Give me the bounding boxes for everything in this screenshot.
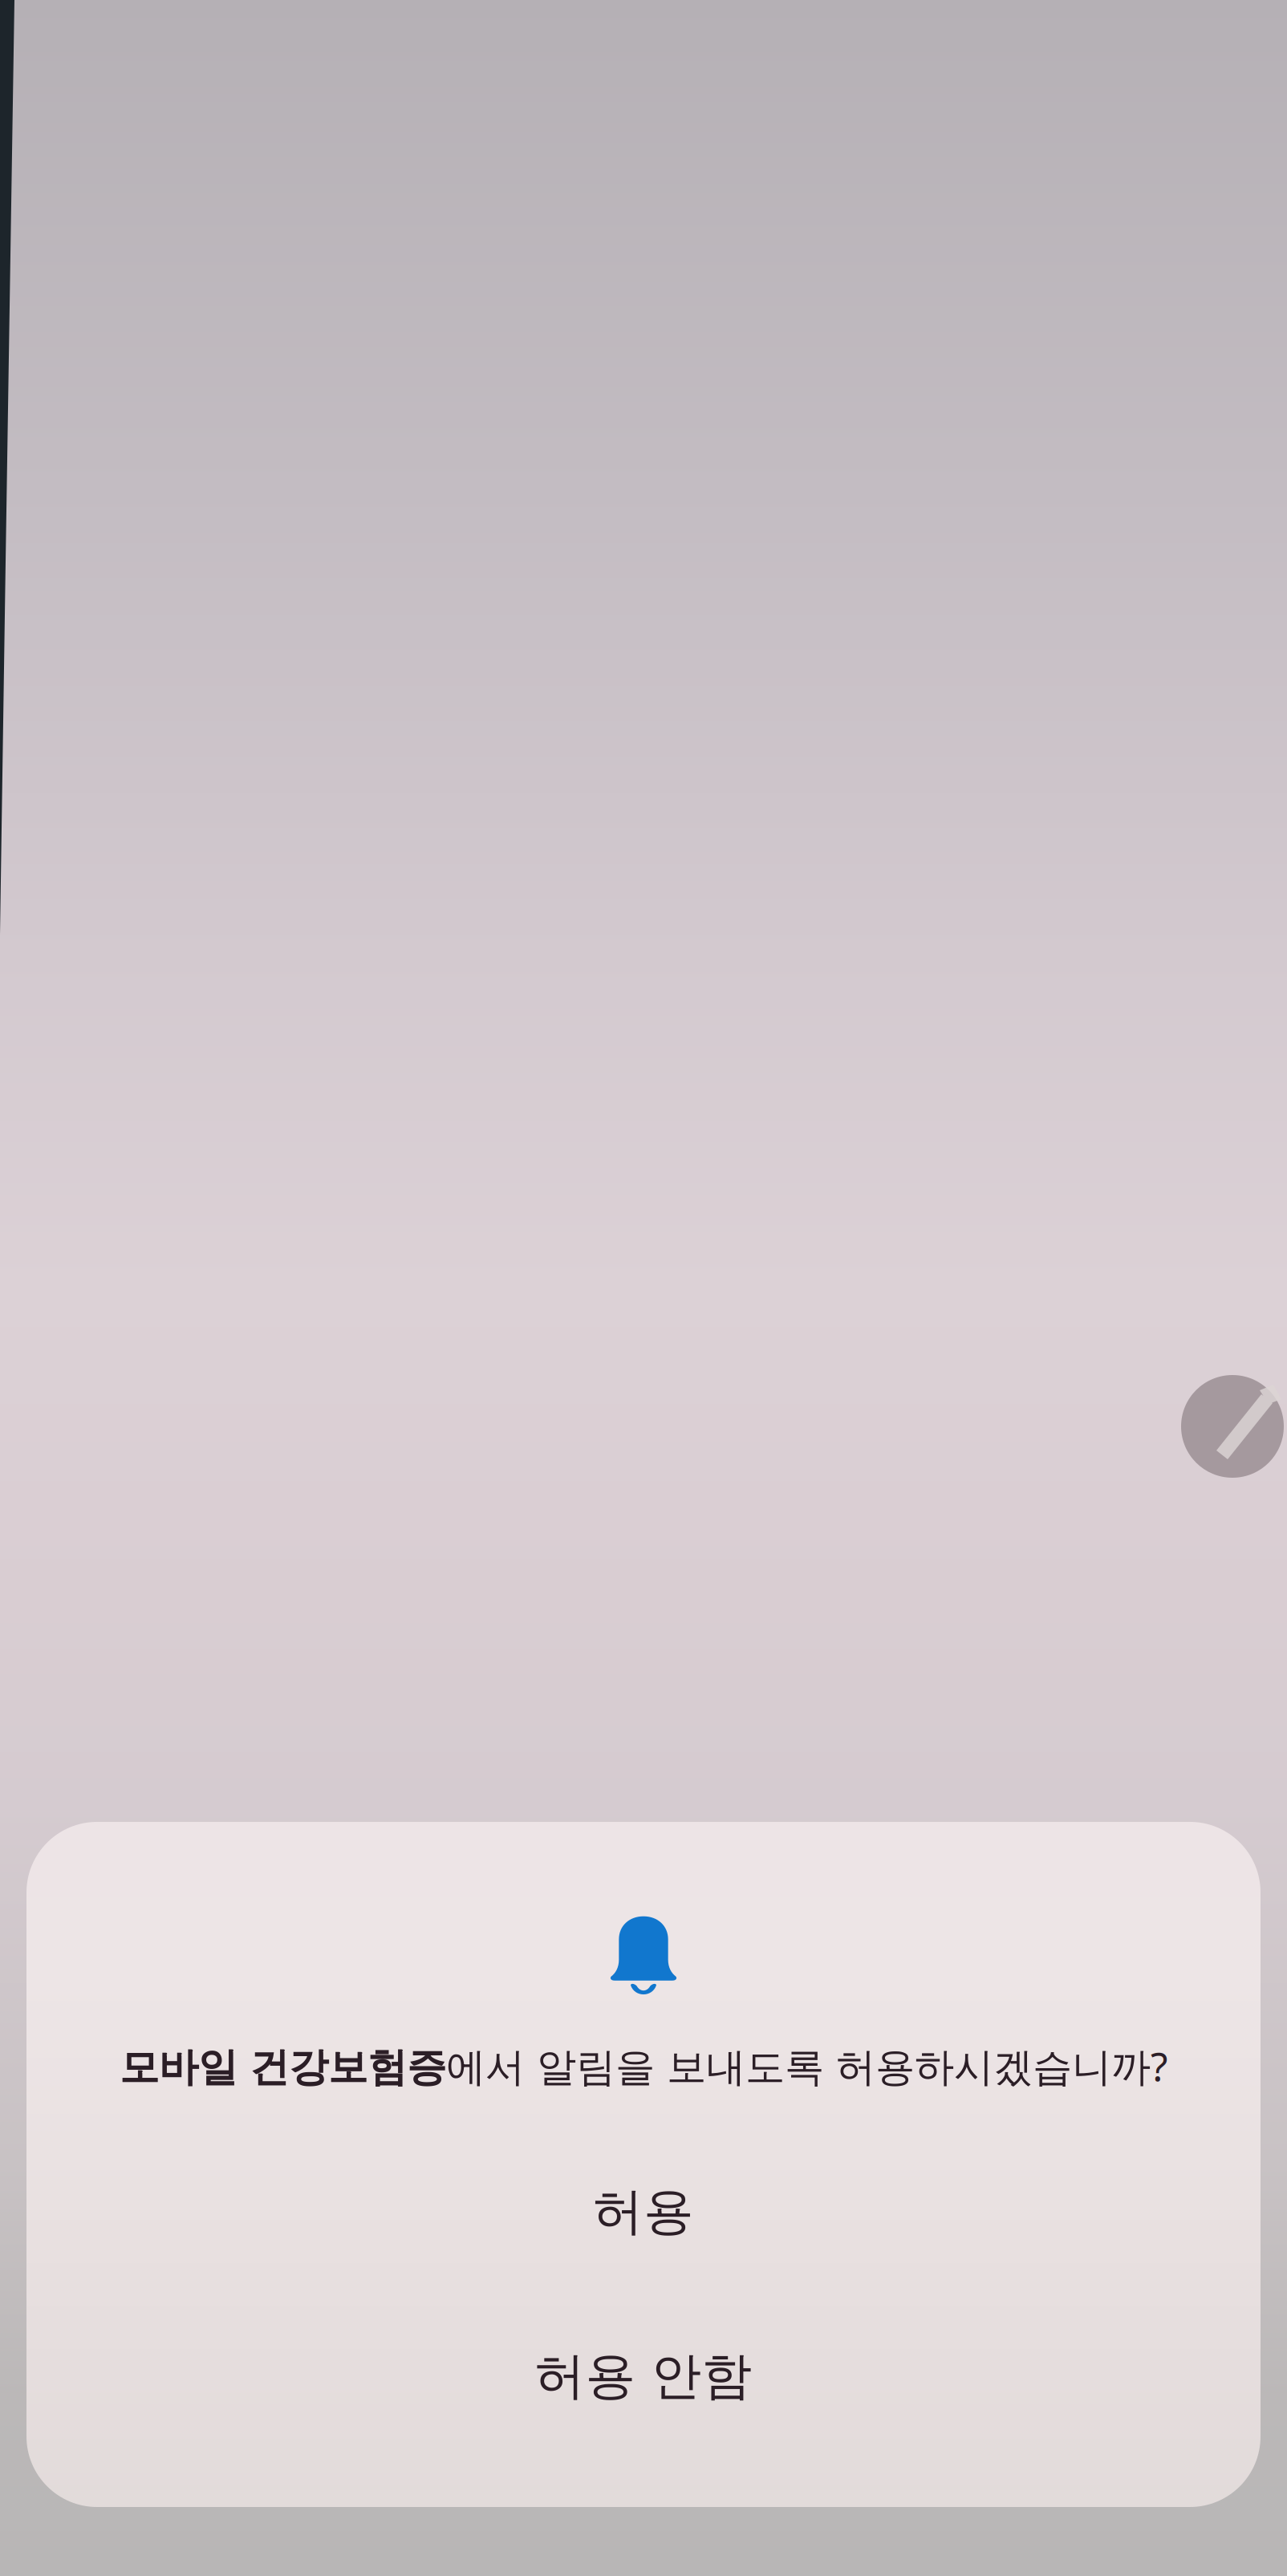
- button[interactable]: 허용: [26, 2151, 1261, 2273]
- button[interactable]: 허용 안함: [26, 2315, 1261, 2437]
- staticText: 모바일 건강보험증에서 알림을 보내도록 허용하시겠습니까?: [120, 2039, 1167, 2092]
- staticText: 허용: [593, 2181, 694, 2243]
- staticText: 허용 안함: [535, 2345, 752, 2407]
